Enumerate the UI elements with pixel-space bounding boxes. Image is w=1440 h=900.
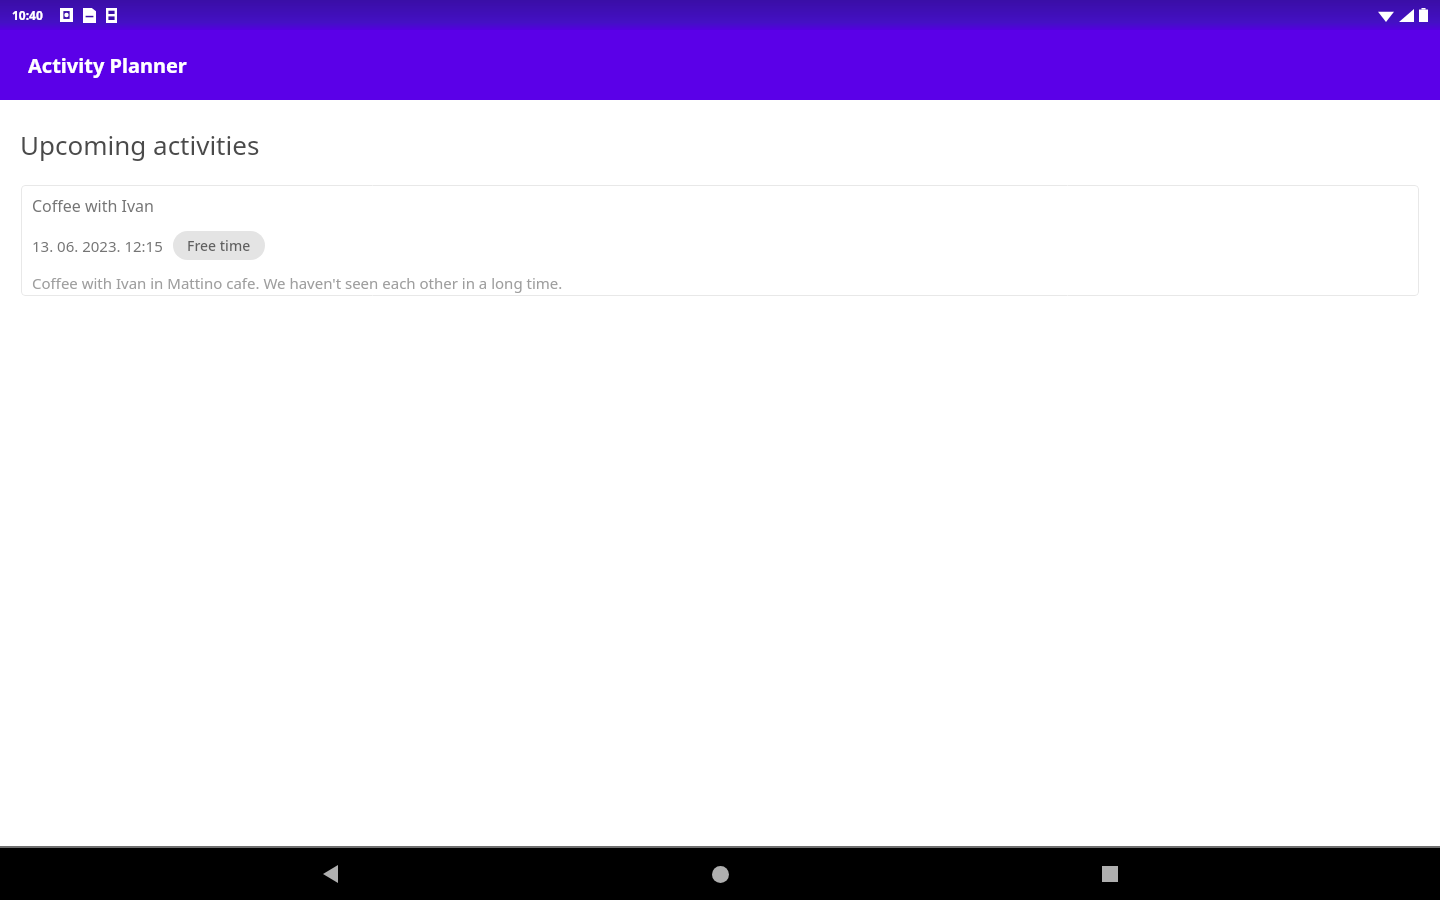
button[interactable]: Free time [173,231,265,260]
staticText: Upcoming activities [20,127,260,162]
staticText: 10:40 [12,7,43,23]
staticText: Free time [187,236,251,255]
staticText: Coffee with Ivan [32,195,154,217]
staticText: Coffee with Ivan in Mattino cafe. We hav… [32,273,563,293]
staticText: 13. 06. 2023. 12:15 [32,236,163,256]
button[interactable]: Home [480,848,960,900]
button[interactable]: Back [0,848,480,900]
staticText: Activity Planner [28,52,187,79]
button[interactable]: Coffee with Ivan [21,185,1419,296]
button[interactable]: Recent apps [960,848,1440,900]
